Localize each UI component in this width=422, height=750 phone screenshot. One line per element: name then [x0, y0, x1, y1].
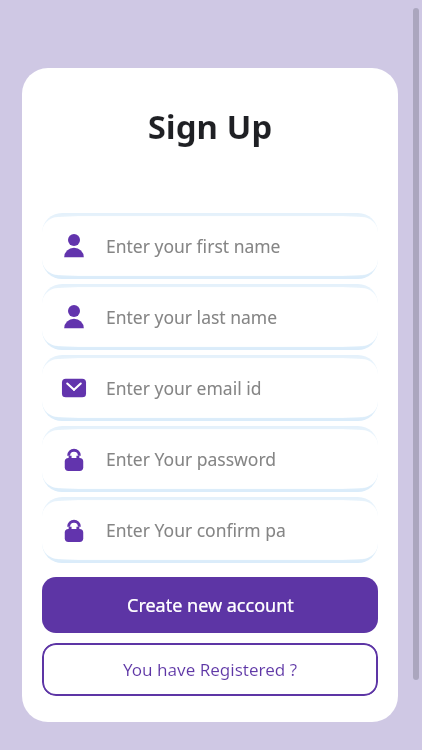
- button[interactable]: Create new account: [42, 577, 378, 633]
- staticText: Enter Your password: [106, 447, 277, 471]
- staticText: Enter your first name: [106, 234, 281, 258]
- button[interactable]: Enter your email id: [42, 359, 378, 417]
- staticText: Sign Up: [42, 104, 378, 149]
- button[interactable]: Enter Your confirm pa: [42, 501, 378, 559]
- button[interactable]: You have Registered ?: [42, 643, 378, 696]
- staticText: Enter your email id: [106, 376, 262, 400]
- button[interactable]: Enter your first name: [42, 217, 378, 275]
- button[interactable]: Enter your last name: [42, 288, 378, 346]
- button[interactable]: Enter Your password: [42, 430, 378, 488]
- staticText: Enter your last name: [106, 305, 278, 329]
- staticText: Enter Your confirm pa: [106, 518, 286, 542]
- staticText: You have Registered ?: [123, 658, 298, 681]
- staticText: Create new account: [127, 593, 294, 618]
